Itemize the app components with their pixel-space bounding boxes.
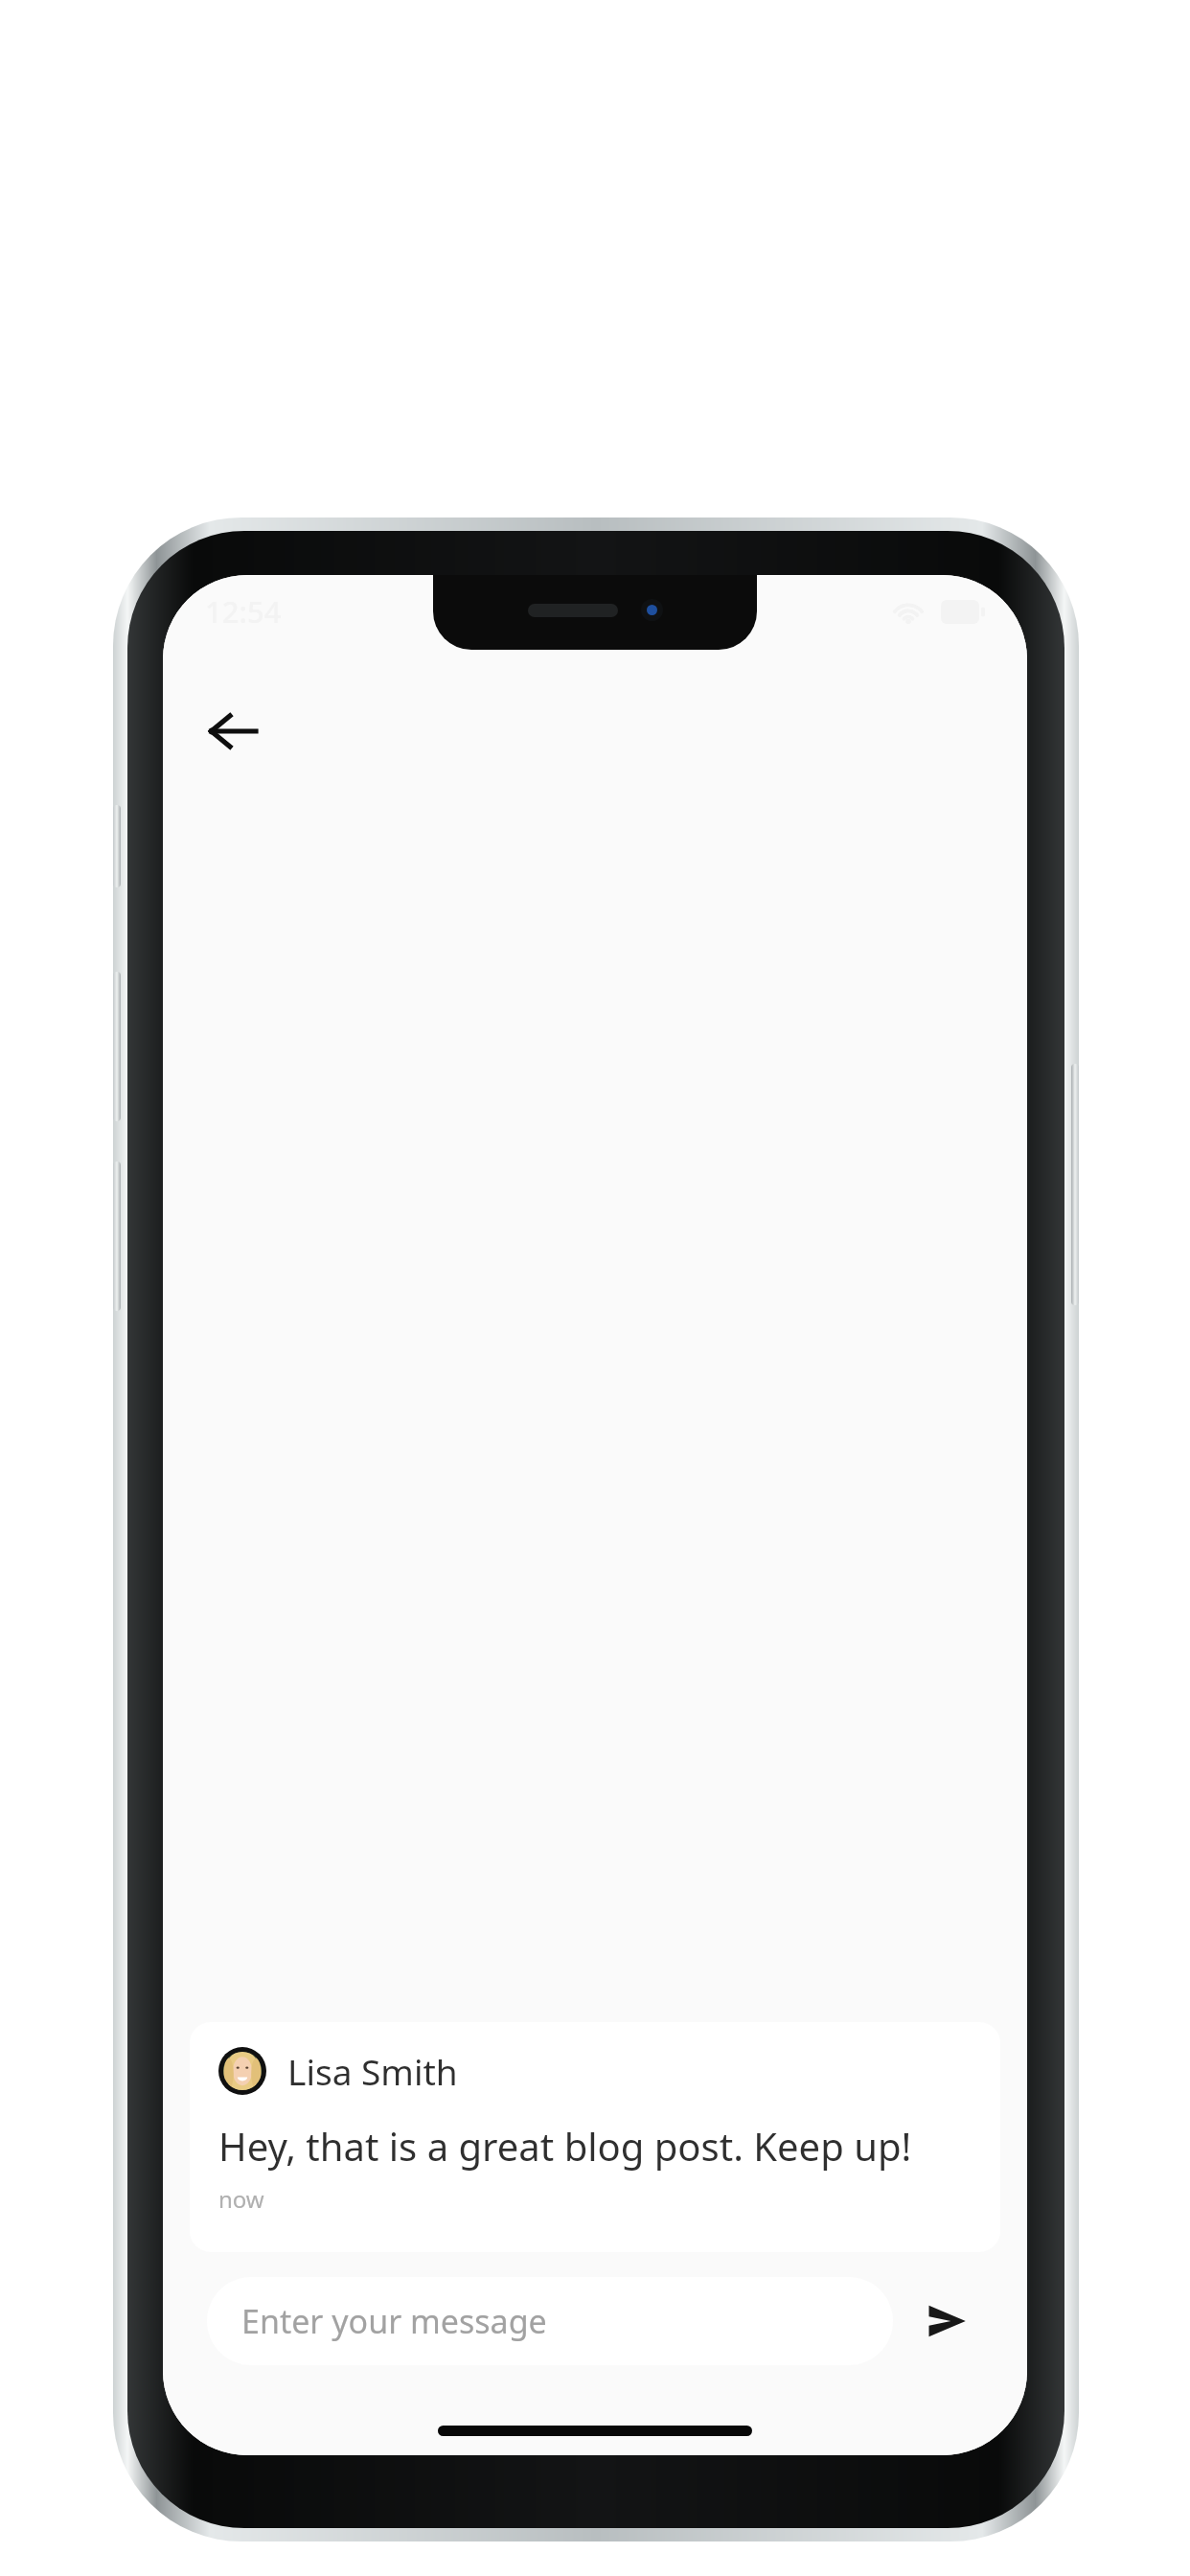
button[interactable]: Send (910, 2285, 983, 2357)
button[interactable]: Back (182, 680, 284, 782)
staticText: now (218, 2183, 264, 2215)
staticText: Lisa Smith (287, 2047, 458, 2095)
staticText: Hey, that is a great blog post. Keep up! (218, 2120, 912, 2172)
button[interactable]: Enter your message (207, 2277, 893, 2365)
staticText: Enter your message (241, 2299, 547, 2343)
button[interactable]: Lisa Smith (190, 2022, 1000, 2252)
